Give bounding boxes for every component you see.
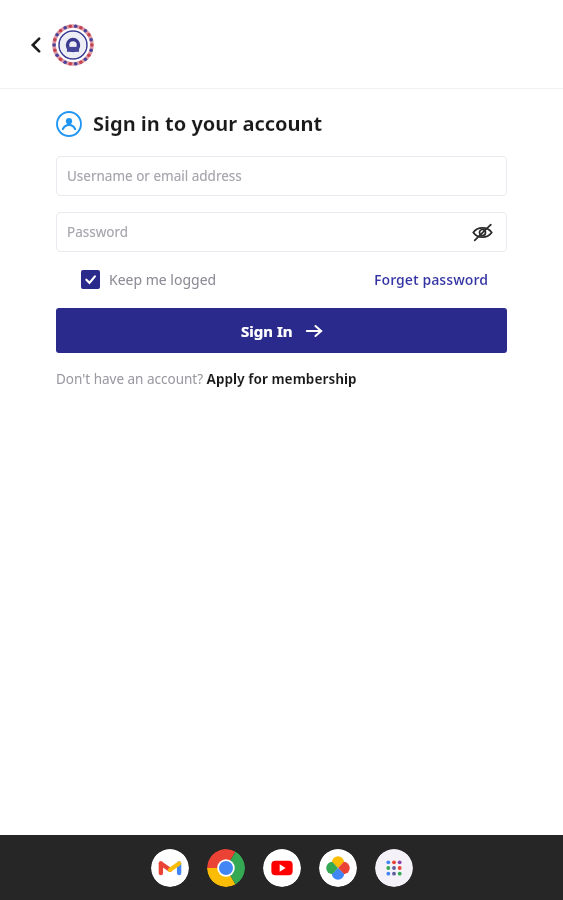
staticText: Sign in to your account <box>93 110 323 137</box>
button[interactable]: Forget password <box>374 270 488 289</box>
staticText: Sign In <box>241 321 293 341</box>
staticText: Don't have an account? Apply for members… <box>56 370 357 388</box>
staticText: Password <box>67 223 129 241</box>
button[interactable]: Back <box>16 25 56 65</box>
button[interactable]: Gmail <box>151 849 189 887</box>
staticText: Username or email address <box>67 167 242 185</box>
button[interactable]: Sign In <box>56 308 507 353</box>
button[interactable]: Show password <box>466 216 498 248</box>
button[interactable]: Username or email address <box>56 156 507 196</box>
button[interactable]: Password <box>56 212 507 252</box>
staticText: Keep me logged <box>109 270 217 289</box>
button[interactable]: YouTube <box>263 849 301 887</box>
button[interactable]: All apps <box>375 849 413 887</box>
staticText: Forget password <box>374 270 488 289</box>
button[interactable]: Keep me logged <box>81 270 217 289</box>
button[interactable]: Chrome <box>207 849 245 887</box>
button[interactable]: Google Photos <box>319 849 357 887</box>
